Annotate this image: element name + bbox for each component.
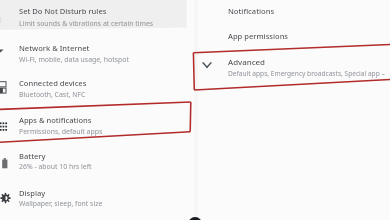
button[interactable]: Expand Advanced [199,52,390,86]
staticText: Set Do Not Disturb rules [19,6,107,16]
staticText: Wi-Fi, mobile, data usage, hotspot [19,55,129,64]
staticText: Advanced [228,57,265,68]
button[interactable] [0,36,187,68]
button[interactable] [0,182,187,214]
staticText: Wallpaper, sleep, font size [19,199,103,208]
staticText: Display [19,188,46,198]
staticText: 26% - about 10 hrs left [19,162,92,171]
staticText: Connected devices [19,78,87,88]
button[interactable] [0,109,187,141]
staticText: Notifications [228,6,275,16]
button[interactable] [199,0,390,23]
staticText: Network & Internet [19,43,90,53]
button[interactable] [0,72,187,104]
staticText: Default apps, Emergency broadcasts, Spec… [228,69,385,78]
staticText: Apps & notifications [19,115,92,125]
staticText: App permissions [228,31,289,41]
staticText: Battery [19,151,46,161]
staticText: Permissions, default apps [19,127,103,136]
button[interactable] [0,0,187,30]
staticText: Limit sounds & vibrations at certain tim… [19,19,154,28]
staticText: Bluetooth, Cast, NFC [19,90,86,99]
button[interactable] [199,24,390,47]
button[interactable] [0,145,187,177]
